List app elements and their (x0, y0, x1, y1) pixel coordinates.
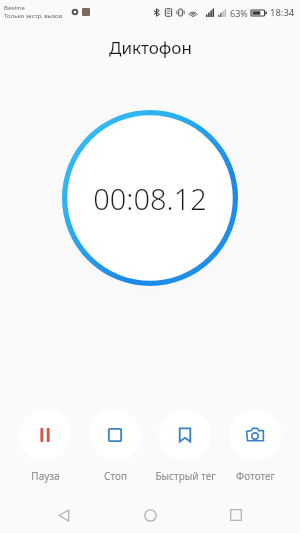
staticText: Диктофон (109, 36, 192, 59)
staticText: Beeline (4, 4, 25, 12)
staticText: Быстрый тег (155, 469, 216, 483)
button[interactable]: Home (128, 497, 172, 533)
button[interactable]: Быстрый тег (152, 409, 218, 483)
button[interactable]: Фототег (222, 409, 288, 483)
button[interactable]: Recents (214, 497, 258, 533)
button[interactable]: Back (42, 497, 86, 533)
staticText: Только экстр. вызов (4, 12, 63, 20)
staticText: 00:08.12 (93, 179, 207, 218)
staticText: Стоп (104, 469, 127, 483)
button[interactable]: Стоп (82, 409, 148, 483)
staticText: Фототег (236, 469, 275, 483)
staticText: Пауза (31, 469, 60, 483)
button[interactable]: Пауза (12, 409, 78, 483)
staticText: 63% (230, 7, 248, 19)
staticText: 18:34 (270, 6, 295, 19)
